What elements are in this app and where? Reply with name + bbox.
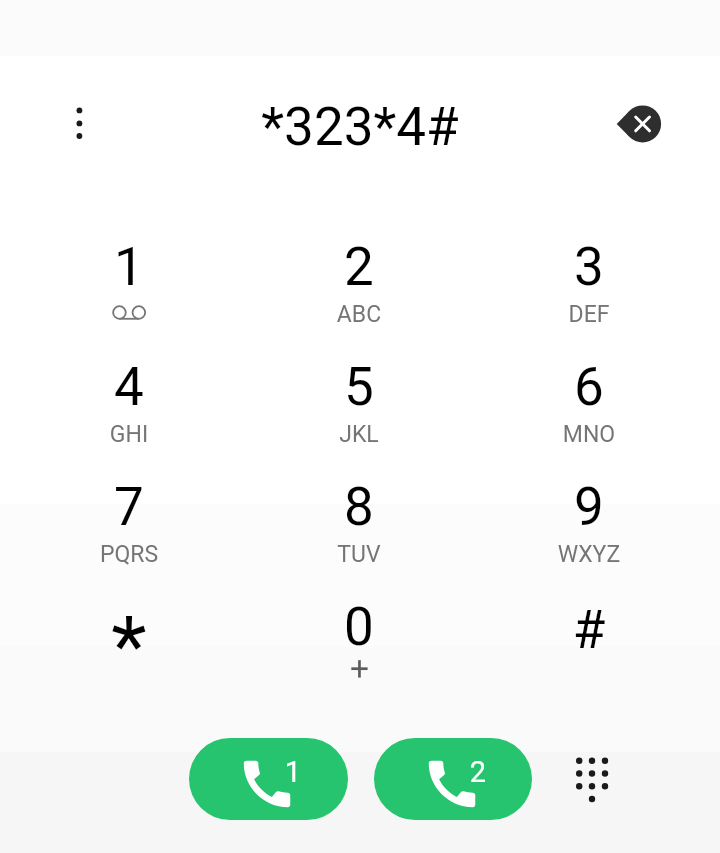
staticText: 2	[453, 755, 503, 789]
button[interactable]: 4	[14, 336, 244, 456]
button[interactable]: 1	[14, 216, 244, 336]
staticText: DEF	[474, 301, 704, 328]
staticText: 0	[244, 596, 474, 658]
button[interactable]: 6	[474, 336, 704, 456]
staticText: ABC	[244, 301, 474, 328]
staticText: PQRS	[14, 541, 244, 568]
button[interactable]: Call with SIM 1	[189, 738, 348, 820]
button[interactable]: #	[474, 576, 704, 696]
staticText: 1	[14, 236, 244, 298]
staticText: 3	[474, 236, 704, 298]
staticText: *323*4#	[0, 96, 720, 158]
button[interactable]: 9	[474, 456, 704, 576]
button[interactable]: 7	[14, 456, 244, 576]
button[interactable]: 5	[244, 336, 474, 456]
button[interactable]: Call with SIM 2	[374, 738, 532, 820]
staticText: 2	[244, 236, 474, 298]
staticText: 7	[14, 476, 244, 538]
staticText: 9	[474, 476, 704, 538]
staticText: GHI	[14, 421, 244, 448]
button[interactable]: Backspace	[615, 96, 671, 152]
staticText: WXYZ	[474, 541, 704, 568]
staticText: *	[14, 598, 244, 694]
button[interactable]: *	[14, 576, 244, 696]
button[interactable]: 3	[474, 216, 704, 336]
staticText: 6	[474, 356, 704, 418]
staticText: #	[474, 599, 704, 661]
staticText: JKL	[244, 421, 474, 448]
button[interactable]: 0	[244, 576, 474, 696]
staticText: 1	[268, 755, 318, 789]
staticText: 8	[244, 476, 474, 538]
button[interactable]: Show keypad	[564, 752, 620, 808]
button[interactable]: 8	[244, 456, 474, 576]
staticText: TUV	[244, 541, 474, 568]
staticText: 4	[14, 356, 244, 418]
staticText: 5	[244, 356, 474, 418]
staticText: MNO	[474, 421, 704, 448]
button[interactable]: More options	[51, 95, 107, 151]
button[interactable]: 2	[244, 216, 474, 336]
